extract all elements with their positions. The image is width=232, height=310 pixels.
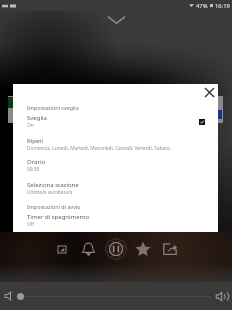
button[interactable]: Ripeti	[13, 137, 218, 157]
button[interactable]: Volume up	[214, 288, 230, 304]
staticText: 00:30	[27, 166, 40, 173]
staticText: Sveglia	[27, 114, 47, 122]
button[interactable]: Close	[201, 84, 218, 101]
staticText: 16:19	[215, 2, 230, 10]
staticText: Timer di spegnimento	[27, 213, 90, 221]
button[interactable]: Cast	[54, 236, 69, 262]
staticText: 47%	[196, 2, 208, 10]
staticText: Off	[27, 221, 35, 228]
button[interactable]: Share	[162, 236, 178, 262]
button[interactable]: Pause	[103, 236, 129, 262]
button[interactable]: Favourite	[134, 236, 152, 262]
staticText: Domenica, Lunedì, Martedì, Mercoledì, Gi…	[27, 145, 170, 152]
button[interactable]: Sveglia	[13, 114, 218, 134]
button[interactable]: Collapse	[106, 13, 126, 27]
button[interactable]: Timer di spegnimento	[13, 213, 218, 233]
staticText: On	[27, 122, 34, 129]
staticText: Ripeti	[27, 137, 44, 145]
staticText: Ultima/e ascoltata/e	[27, 189, 73, 196]
staticText: Impostazioni sveglia	[27, 104, 79, 111]
button[interactable]: Orario	[13, 158, 218, 178]
staticText: Orario	[27, 158, 46, 166]
button[interactable]: Mute	[2, 289, 16, 303]
staticText: Impostazioni di avvio	[27, 203, 81, 210]
button[interactable]: Alarm	[80, 236, 97, 262]
button[interactable]: Seleziona stazione	[13, 181, 218, 201]
button[interactable]: Volume	[16, 293, 212, 300]
staticText: Seleziona stazione	[27, 181, 79, 189]
